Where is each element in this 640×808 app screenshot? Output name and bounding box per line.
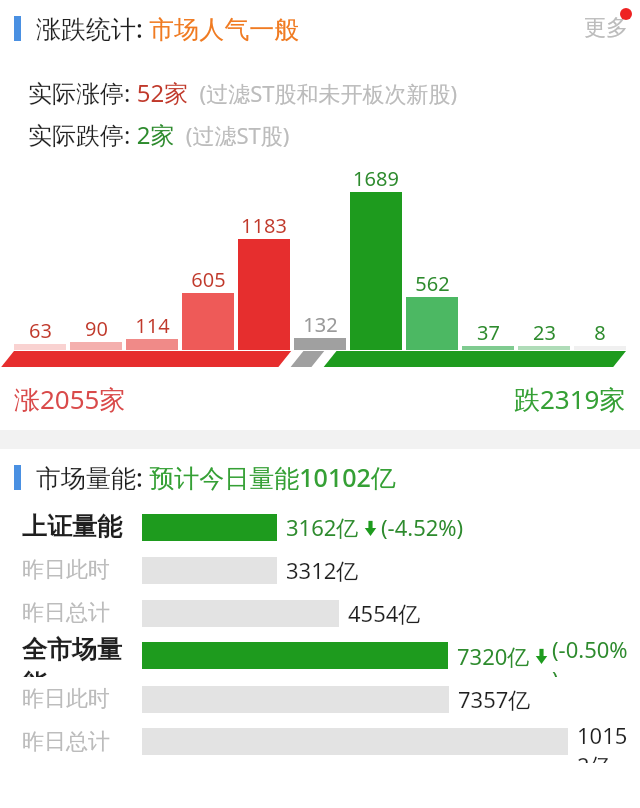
staticText: 7320亿 xyxy=(457,641,530,671)
staticText: (-4.52%) xyxy=(381,512,464,542)
staticText: 1689 xyxy=(353,165,399,192)
staticText: 7357亿 xyxy=(458,684,531,714)
staticText: 实际跌停: 2家 (过滤ST股) xyxy=(28,118,290,151)
staticText: 昨日此时 xyxy=(22,556,110,584)
staticText: 562 xyxy=(415,270,450,297)
staticText: 605 xyxy=(191,266,226,293)
staticText: 跌2319家 xyxy=(514,381,626,417)
staticText: 63 xyxy=(29,317,52,344)
button[interactable]: 昨日总计 xyxy=(0,720,640,763)
staticText: 昨日总计 xyxy=(22,599,110,627)
button[interactable]: 昨日此时 xyxy=(0,677,640,720)
button[interactable]: 涨跌统计: 市场人气一般 xyxy=(14,11,300,45)
button[interactable]: 上证量能 xyxy=(0,505,640,548)
button[interactable]: 昨日此时 xyxy=(0,548,640,591)
staticText: 市场量能: 预计今日量能10102亿 xyxy=(36,460,396,494)
staticText: 114 xyxy=(135,312,170,339)
button[interactable]: 全市场量能 xyxy=(0,634,640,677)
staticText: 涨跌统计: 市场人气一般 xyxy=(36,11,300,45)
button[interactable]: 更多 xyxy=(584,14,628,42)
staticText: 37 xyxy=(477,319,500,346)
staticText: 更多 xyxy=(584,14,628,42)
staticText: 实际涨停: 52家 (过滤ST股和未开板次新股) xyxy=(28,76,458,109)
staticText: 上证量能 xyxy=(22,511,122,542)
staticText: 涨2055家 xyxy=(14,381,126,417)
staticText: 全市场量能 xyxy=(22,634,142,677)
staticText: 8 xyxy=(594,319,606,346)
staticText: 10152亿 xyxy=(577,720,630,763)
staticText: 3162亿 xyxy=(286,512,359,542)
staticText: 132 xyxy=(303,311,338,338)
staticText: 23 xyxy=(533,319,556,346)
staticText: 90 xyxy=(85,315,108,342)
staticText: 昨日总计 xyxy=(22,728,110,756)
staticText: 3312亿 xyxy=(286,555,359,585)
staticText: 4554亿 xyxy=(348,598,421,628)
staticText: 1183 xyxy=(241,212,287,239)
button[interactable]: 昨日总计 xyxy=(0,591,640,634)
button[interactable]: 市场量能: 预计今日量能10102亿 xyxy=(0,449,640,505)
staticText: (-0.50%) xyxy=(552,634,630,677)
staticText: 昨日此时 xyxy=(22,685,110,713)
